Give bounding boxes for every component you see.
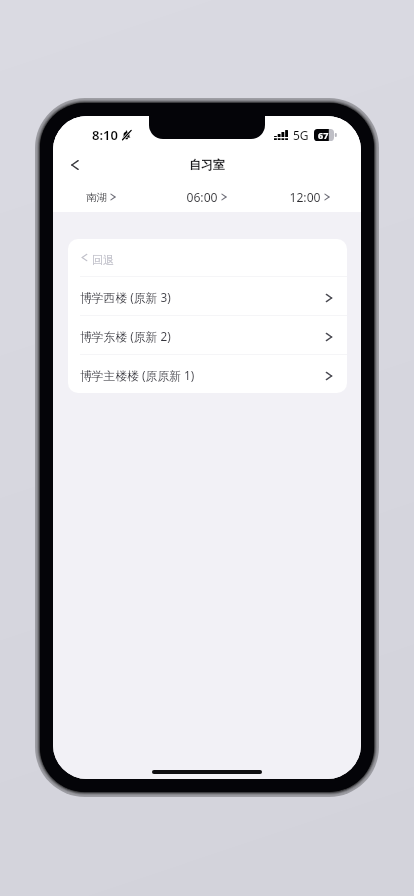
button[interactable]: 博学东楼 (原新 2) [68,316,347,354]
button[interactable]: 12:00 [258,182,361,212]
button[interactable]: 博学西楼 (原新 3) [68,277,347,315]
staticText: 06:00 [186,189,218,206]
button[interactable]: 南湖 [53,182,152,212]
button[interactable]: 回退 [68,239,347,276]
staticText: 12:00 [289,189,321,206]
staticText: 博学主楼楼 (原原新 1) [80,367,195,383]
staticText: 8:10 [92,126,118,144]
button[interactable]: 博学主楼楼 (原原新 1) [68,355,347,393]
staticText: 南湖 [86,191,107,204]
button[interactable]: 06:00 [155,182,258,212]
staticText: 自习室 [189,157,225,172]
staticText: 5G [293,127,309,143]
staticText: 博学东楼 (原新 2) [80,328,171,344]
staticText: 67 [318,129,329,141]
button[interactable]: Back [60,150,90,180]
staticText: 回退 [92,253,114,267]
staticText: 博学西楼 (原新 3) [80,289,171,305]
